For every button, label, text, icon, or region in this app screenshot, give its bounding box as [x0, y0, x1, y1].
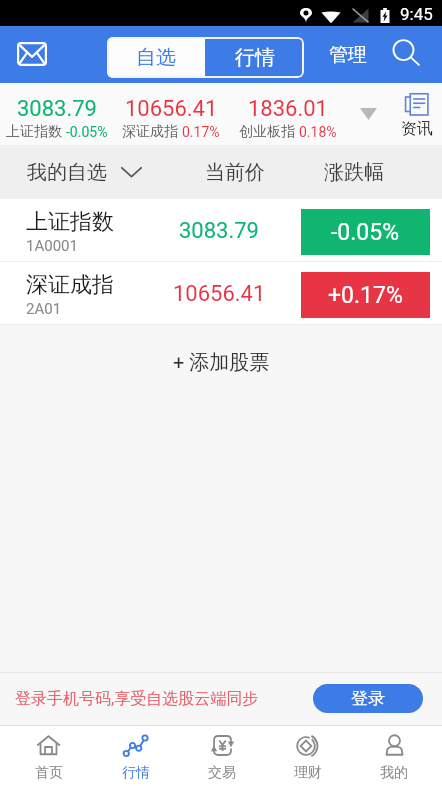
button[interactable]: Expand indexes [348, 94, 388, 134]
staticText: -0.05% [331, 219, 400, 246]
button[interactable]: 自选 [107, 37, 205, 78]
staticText: 2A01 [26, 300, 62, 318]
button[interactable]: 当前价 [205, 145, 265, 199]
staticText: 登录手机号码,享受自选股云端同步 [15, 689, 259, 709]
staticText: + 添加股票 [173, 350, 270, 375]
button[interactable]: 我的 [351, 725, 437, 786]
staticText: 当前价 [205, 160, 265, 185]
button[interactable]: 涨跌幅 [324, 145, 384, 199]
staticText: 涨跌幅 [324, 160, 384, 185]
button[interactable]: 登录 [313, 684, 423, 713]
staticText: 上证指数 [26, 208, 114, 236]
staticText: 深证成指 [122, 123, 178, 141]
staticText: 10656.41 [125, 96, 218, 122]
staticText: 首页 [35, 764, 63, 782]
button[interactable]: Messages [7, 31, 57, 76]
staticText: 0.17% [182, 124, 220, 140]
staticText: 创业板指 [239, 123, 295, 141]
button[interactable]: 交易 [179, 725, 265, 786]
staticText: 0.18% [299, 124, 337, 140]
staticText: 上证指数 [6, 123, 62, 141]
staticText: -0.05% [66, 124, 108, 140]
button[interactable]: 上证指数 [0, 199, 442, 262]
button[interactable]: 10656.41 [114, 96, 228, 141]
button[interactable]: 我的自选 [0, 145, 156, 199]
staticText: 登录 [351, 688, 385, 709]
staticText: 我的自选 [27, 160, 107, 185]
button[interactable]: + 添加股票 [0, 325, 442, 399]
staticText: 3083.79 [17, 96, 97, 122]
staticText: 1A0001 [26, 237, 78, 255]
button[interactable]: 管理 [318, 32, 378, 78]
staticText: 资讯 [401, 119, 433, 139]
staticText: 行情 [235, 45, 275, 70]
button[interactable]: 1836.01 [231, 96, 345, 141]
staticText: 行情 [122, 764, 150, 782]
button[interactable]: 3083.79 [0, 96, 114, 141]
staticText: 管理 [329, 43, 367, 67]
button[interactable]: 深证成指 [0, 262, 442, 325]
staticText: 3083.79 [179, 218, 259, 244]
staticText: +0.17% [328, 282, 403, 309]
button[interactable]: 首页 [5, 725, 92, 786]
staticText: 1836.01 [248, 96, 328, 122]
button[interactable]: Search [383, 31, 429, 77]
button[interactable]: 行情 [92, 725, 179, 786]
button[interactable]: 行情 [205, 37, 304, 78]
staticText: 理财 [294, 764, 322, 782]
staticText: 9:45 [400, 4, 433, 24]
staticText: 我的 [380, 764, 408, 782]
staticText: 深证成指 [26, 271, 114, 299]
staticText: 10656.41 [173, 281, 266, 307]
staticText: 自选 [136, 45, 176, 70]
staticText: 交易 [208, 764, 236, 782]
button[interactable]: 理财 [265, 725, 351, 786]
button[interactable]: 资讯 [393, 92, 441, 139]
